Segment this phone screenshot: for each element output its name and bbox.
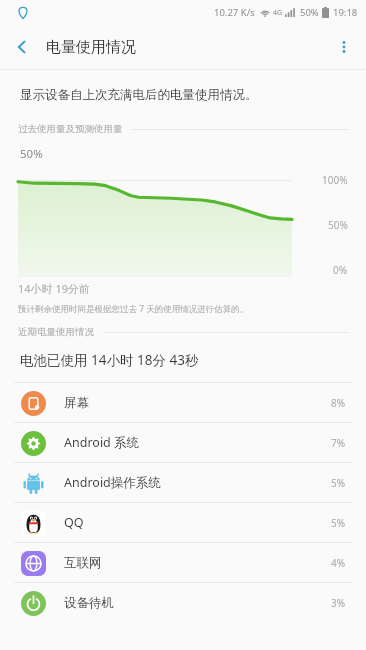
staticText: 预计剩余使用时间是根据您过去 7 天的使用情况进行估算的。 bbox=[18, 303, 249, 315]
staticText: 5% bbox=[331, 516, 346, 530]
staticText: 14小时 19分前 bbox=[18, 281, 91, 296]
staticText: QQ bbox=[64, 514, 331, 531]
staticText: 8% bbox=[331, 396, 346, 410]
staticText: Android 系统 bbox=[64, 434, 331, 451]
staticText: 50% bbox=[300, 6, 319, 19]
button[interactable]: 屏幕 bbox=[0, 383, 366, 422]
staticText: 设备待机 bbox=[64, 595, 331, 611]
button[interactable]: More options bbox=[322, 25, 366, 69]
staticText: 过去使用量及预测使用量 bbox=[18, 123, 123, 135]
staticText: 互联网 bbox=[64, 555, 331, 571]
button[interactable]: 设备待机 bbox=[0, 583, 366, 622]
button[interactable]: 互联网 bbox=[0, 543, 366, 582]
staticText: 50% bbox=[20, 146, 43, 162]
staticText: 3% bbox=[331, 596, 346, 610]
staticText: Android操作系统 bbox=[64, 474, 331, 491]
button[interactable]: Android操作系统 bbox=[0, 463, 366, 502]
staticText: 19:18 bbox=[333, 6, 358, 19]
staticText: 4% bbox=[331, 556, 346, 570]
staticText: 7% bbox=[331, 436, 346, 450]
staticText: 0% bbox=[333, 263, 348, 277]
staticText: 5% bbox=[331, 476, 346, 490]
button[interactable]: Android 系统 bbox=[0, 423, 366, 462]
staticText: 10.27 K/s bbox=[214, 6, 255, 19]
staticText: 显示设备自上次充满电后的电量使用情况。 bbox=[20, 87, 258, 103]
staticText: 电池已使用 14小时 18分 43秒 bbox=[20, 351, 199, 369]
staticText: 100% bbox=[322, 173, 348, 187]
staticText: 50% bbox=[328, 218, 348, 232]
button[interactable]: Back bbox=[0, 25, 44, 69]
staticText: 4G bbox=[273, 8, 283, 18]
button[interactable]: QQ bbox=[0, 503, 366, 542]
staticText: 近期电量使用情况 bbox=[18, 326, 94, 338]
staticText: 电量使用情况 bbox=[46, 38, 136, 57]
staticText: 屏幕 bbox=[64, 395, 331, 411]
